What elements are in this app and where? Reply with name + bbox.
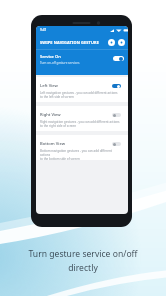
staticText: Turn gesture service on/off directly [0, 248, 166, 273]
staticText: Right View [40, 112, 61, 118]
button[interactable]: Switch on [113, 56, 124, 61]
staticText: SWIPE NAVIGATION GESTURE [40, 40, 99, 45]
staticText: Bottom navigation gestures - you can add… [40, 149, 122, 161]
staticText: Turn on-off gesture services [40, 61, 80, 65]
button[interactable]: Service On [36, 49, 128, 75]
staticText: Left View [40, 83, 58, 89]
staticText: Right navigation gestures - you can add … [40, 120, 120, 128]
button[interactable]: Switch off [112, 142, 121, 146]
staticText: Bottom View [40, 141, 65, 147]
staticText: 9:41 [40, 28, 47, 32]
button[interactable]: Left View [36, 77, 128, 102]
staticText: Service On [40, 54, 61, 60]
button[interactable]: Right View [36, 106, 128, 131]
staticText: Left navigation gestures - you can add d… [40, 91, 118, 99]
button[interactable]: Bottom View [36, 135, 128, 160]
button[interactable]: Settings [108, 39, 115, 46]
button[interactable]: About [118, 39, 125, 46]
button[interactable]: Switch on [112, 84, 121, 88]
button[interactable]: Switch off [112, 113, 121, 117]
